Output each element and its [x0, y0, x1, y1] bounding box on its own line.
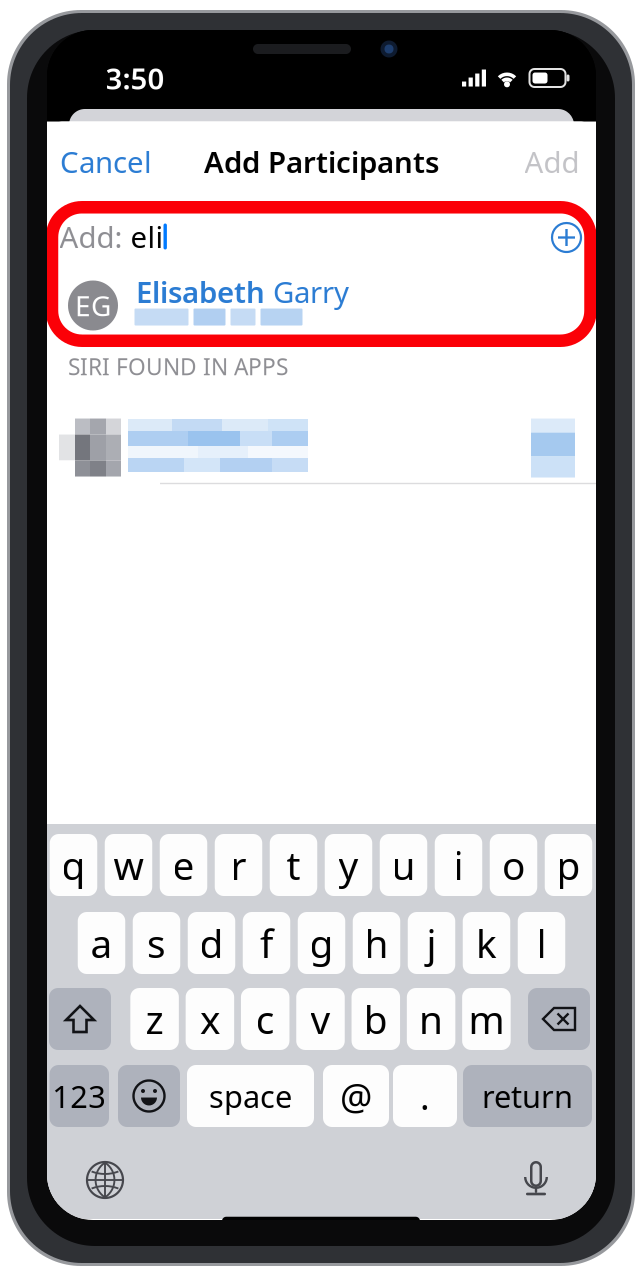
button[interactable]: x: [186, 988, 234, 1050]
staticText: j: [426, 917, 436, 969]
staticText: space: [209, 1076, 292, 1116]
button[interactable]: h: [353, 912, 400, 974]
staticText: 123: [52, 1076, 106, 1116]
staticText: c: [256, 993, 275, 1045]
button[interactable]: Add contact: [542, 213, 590, 261]
button[interactable]: y: [325, 834, 372, 896]
staticText: z: [146, 993, 164, 1045]
staticText: v: [310, 993, 330, 1045]
staticText: e: [172, 839, 194, 891]
button[interactable]: i: [435, 834, 482, 896]
button[interactable]: Dictation: [508, 1155, 564, 1205]
button[interactable]: j: [408, 912, 455, 974]
staticText: l: [536, 917, 546, 969]
staticText: h: [364, 917, 388, 969]
staticText: Add: [524, 142, 579, 181]
staticText: EG: [75, 287, 111, 324]
button[interactable]: Emoji: [118, 1065, 180, 1127]
staticText: Add:: [59, 217, 122, 256]
staticText: .: [420, 1072, 430, 1120]
staticText: 3:50: [105, 58, 164, 97]
button[interactable]: n: [407, 988, 455, 1050]
staticText: a: [90, 917, 112, 969]
staticText: Elisabeth: [136, 272, 265, 311]
staticText: d: [199, 917, 223, 969]
staticText: Cancel: [60, 142, 152, 181]
button[interactable]: c: [241, 988, 289, 1050]
staticText: r: [230, 839, 246, 891]
button[interactable]: p: [545, 834, 592, 896]
button[interactable]: Next keyboard: [77, 1155, 133, 1205]
staticText: m: [468, 993, 504, 1045]
staticText: b: [364, 993, 388, 1045]
button[interactable]: f: [243, 912, 290, 974]
staticText: k: [476, 917, 497, 969]
staticText: x: [200, 993, 220, 1045]
button[interactable]: s: [133, 912, 180, 974]
button[interactable]: d: [188, 912, 235, 974]
staticText: Add Participants: [204, 142, 439, 181]
staticText: p: [556, 839, 580, 891]
staticText: g: [309, 917, 333, 969]
button[interactable]: k: [463, 912, 510, 974]
button[interactable]: a: [78, 912, 125, 974]
staticText: u: [391, 839, 415, 891]
button[interactable]: u: [380, 834, 427, 896]
button[interactable]: g: [298, 912, 345, 974]
button[interactable]: .: [393, 1065, 457, 1127]
button[interactable]: v: [296, 988, 345, 1050]
button[interactable]: b: [351, 988, 400, 1050]
button[interactable]: 123: [49, 1065, 109, 1127]
button[interactable]: w: [105, 834, 152, 896]
staticText: q: [61, 839, 85, 891]
staticText: SIRI FOUND IN APPS: [68, 351, 288, 381]
staticText: eli: [122, 217, 163, 256]
staticText: f: [260, 917, 273, 969]
staticText: s: [147, 917, 166, 969]
staticText: w: [113, 839, 143, 891]
button[interactable]: z: [130, 988, 179, 1050]
staticText: t: [286, 839, 300, 891]
button[interactable]: Delete: [528, 988, 590, 1050]
button[interactable]: t: [270, 834, 317, 896]
button[interactable]: space: [187, 1065, 314, 1127]
staticText: n: [419, 993, 443, 1045]
button[interactable]: r: [215, 834, 262, 896]
staticText: o: [502, 839, 525, 891]
staticText: y: [338, 839, 358, 891]
button[interactable]: [47, 397, 596, 497]
staticText: i: [453, 839, 463, 891]
staticText: @: [340, 1072, 372, 1120]
button[interactable]: @: [323, 1065, 389, 1127]
button[interactable]: Shift: [49, 988, 111, 1050]
staticText: return: [482, 1076, 573, 1116]
button[interactable]: return: [463, 1065, 592, 1127]
button[interactable]: o: [490, 834, 537, 896]
button[interactable]: q: [50, 834, 97, 896]
button[interactable]: l: [518, 912, 565, 974]
button[interactable]: Add: [507, 130, 597, 192]
button[interactable]: EG: [47, 260, 596, 350]
button[interactable]: Cancel: [51, 130, 161, 192]
button[interactable]: m: [462, 988, 511, 1050]
staticText: Garry: [265, 272, 349, 311]
button[interactable]: e: [160, 834, 207, 896]
